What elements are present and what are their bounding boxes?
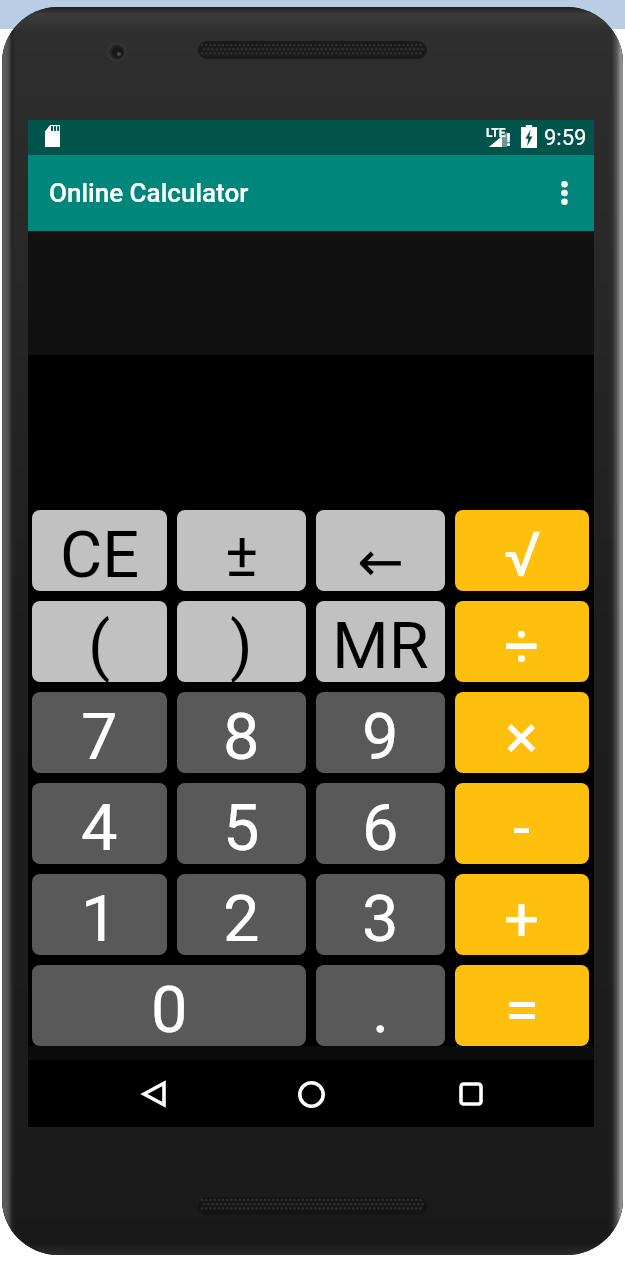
button[interactable]: .	[316, 965, 445, 1046]
button[interactable]: -	[455, 783, 589, 864]
staticText: +	[504, 882, 540, 955]
button[interactable]: (	[32, 601, 167, 682]
button[interactable]: 4	[32, 783, 167, 864]
button[interactable]: ÷	[455, 601, 589, 682]
staticText: 8	[223, 699, 260, 773]
button[interactable]: Recents	[443, 1066, 499, 1122]
staticText: ←	[357, 529, 404, 591]
staticText: 9:59	[544, 125, 587, 151]
staticText: 7	[81, 699, 118, 773]
staticText: ÷	[504, 609, 540, 682]
button[interactable]: MR	[316, 601, 445, 682]
staticText: 3	[362, 881, 399, 955]
staticText: (	[88, 608, 111, 682]
staticText: -	[513, 791, 531, 864]
staticText: 0	[151, 972, 188, 1046]
staticText: 9	[362, 699, 399, 773]
staticText: 1	[81, 881, 118, 955]
staticText: .	[372, 972, 390, 1046]
staticText: MR	[332, 608, 429, 682]
button[interactable]: 9	[316, 692, 445, 773]
staticText: 2	[223, 881, 260, 955]
button[interactable]: ±	[177, 510, 306, 591]
button[interactable]: √	[455, 510, 589, 591]
staticText: CE	[60, 517, 140, 591]
button[interactable]: ×	[455, 692, 589, 773]
staticText: =	[505, 973, 540, 1046]
button[interactable]: 2	[177, 874, 306, 955]
button[interactable]: +	[455, 874, 589, 955]
button[interactable]: 6	[316, 783, 445, 864]
staticText: Online Calculator	[49, 178, 249, 208]
staticText: 5	[223, 790, 260, 864]
button[interactable]: 0	[32, 965, 306, 1046]
button[interactable]: More options	[540, 169, 588, 217]
button[interactable]: )	[177, 601, 306, 682]
button[interactable]: Back	[126, 1066, 182, 1122]
button[interactable]: CE	[32, 510, 167, 591]
staticText: ±	[225, 518, 259, 591]
button[interactable]: ←	[316, 510, 445, 591]
staticText: √	[504, 518, 541, 591]
staticText: LTE	[486, 126, 506, 140]
button[interactable]: =	[455, 965, 589, 1046]
button[interactable]: 5	[177, 783, 306, 864]
staticText: 4	[81, 790, 118, 864]
button[interactable]: 1	[32, 874, 167, 955]
button[interactable]: 3	[316, 874, 445, 955]
button[interactable]: 7	[32, 692, 167, 773]
staticText: )	[230, 608, 253, 682]
staticText: ×	[505, 700, 539, 773]
staticText: 6	[362, 790, 399, 864]
button[interactable]: Home	[283, 1066, 339, 1122]
button[interactable]: 8	[177, 692, 306, 773]
staticText: !	[506, 129, 511, 150]
